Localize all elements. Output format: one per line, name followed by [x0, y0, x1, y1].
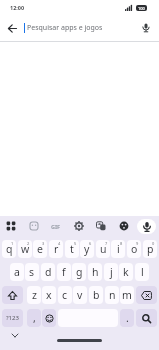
button[interactable]: x: [42, 286, 56, 304]
button[interactable]: l: [135, 263, 149, 281]
button[interactable]: v: [73, 286, 87, 304]
staticText: 3: [42, 241, 45, 246]
button[interactable]: e: [33, 240, 47, 258]
button[interactable]: b: [89, 286, 103, 304]
button[interactable]: ?123: [2, 309, 23, 327]
button[interactable]: [42, 309, 56, 327]
staticText: t: [70, 242, 74, 256]
button[interactable]: [135, 17, 157, 39]
staticText: p: [147, 242, 154, 256]
staticText: 6: [89, 241, 92, 246]
staticText: d: [45, 265, 52, 279]
button[interactable]: [2, 217, 20, 235]
staticText: x: [46, 288, 52, 302]
staticText: 1: [11, 241, 14, 246]
button[interactable]: f: [57, 263, 71, 281]
button[interactable]: [136, 309, 157, 327]
staticText: 0: [152, 241, 155, 246]
staticText: m: [122, 288, 132, 302]
button[interactable]: ,: [27, 309, 41, 327]
button[interactable]: s: [25, 263, 39, 281]
button[interactable]: h: [88, 263, 102, 281]
button[interactable]: [137, 219, 156, 234]
staticText: e: [37, 242, 43, 256]
staticText: a: [14, 265, 20, 279]
staticText: v: [77, 288, 83, 302]
staticText: s: [29, 265, 35, 279]
button[interactable]: z: [27, 286, 41, 304]
button[interactable]: .: [120, 309, 134, 327]
button[interactable]: k: [119, 263, 133, 281]
staticText: 8: [120, 241, 123, 246]
staticText: 7: [105, 241, 108, 246]
button[interactable]: c: [58, 286, 72, 304]
button[interactable]: j: [104, 263, 118, 281]
staticText: 9: [136, 241, 139, 246]
staticText: w: [21, 242, 30, 256]
staticText: Pesquisar apps e jogos: [27, 23, 103, 33]
staticText: n: [109, 288, 116, 302]
button[interactable]: t: [65, 240, 79, 258]
staticText: b: [93, 288, 100, 302]
staticText: i: [117, 242, 120, 256]
button[interactable]: [25, 217, 43, 235]
staticText: l: [141, 265, 144, 279]
button[interactable]: y: [80, 240, 94, 258]
staticText: u: [100, 242, 107, 256]
button[interactable]: [0, 16, 24, 40]
button[interactable]: Pesquisar apps e jogos: [0, 15, 159, 41]
button[interactable]: n: [105, 286, 119, 304]
button[interactable]: m: [120, 286, 134, 304]
staticText: 5: [74, 241, 77, 246]
button[interactable]: w: [18, 240, 32, 258]
staticText: h: [92, 265, 99, 279]
staticText: c: [62, 288, 68, 302]
staticText: f: [62, 265, 66, 279]
button[interactable]: o: [127, 240, 141, 258]
staticText: o: [131, 242, 138, 256]
button[interactable]: [8, 330, 22, 340]
button[interactable]: GIF: [47, 217, 65, 235]
staticText: GIF: [51, 223, 61, 230]
staticText: j: [110, 265, 113, 279]
staticText: q: [6, 242, 13, 256]
button[interactable]: p: [143, 240, 157, 258]
staticText: r: [54, 242, 59, 256]
staticText: 100: [138, 6, 145, 11]
staticText: y: [84, 242, 90, 256]
button[interactable]: a: [10, 263, 24, 281]
staticText: 12:00: [10, 4, 25, 11]
button[interactable]: [70, 217, 88, 235]
button[interactable]: d: [41, 263, 55, 281]
staticText: .: [126, 311, 129, 325]
button[interactable]: q: [2, 240, 16, 258]
staticText: k: [123, 265, 129, 279]
staticText: g: [76, 265, 83, 279]
staticText: ,: [33, 311, 36, 325]
button[interactable]: [115, 217, 133, 235]
staticText: 2: [27, 241, 30, 246]
button[interactable]: [136, 286, 157, 304]
staticText: 4: [58, 241, 61, 246]
button[interactable]: i: [111, 240, 125, 258]
staticText: z: [32, 288, 37, 302]
button[interactable]: u: [96, 240, 110, 258]
button[interactable]: r: [49, 240, 63, 258]
staticText: ?123: [6, 314, 19, 322]
button[interactable]: [92, 217, 110, 235]
button[interactable]: g: [72, 263, 86, 281]
button[interactable]: [2, 286, 23, 304]
